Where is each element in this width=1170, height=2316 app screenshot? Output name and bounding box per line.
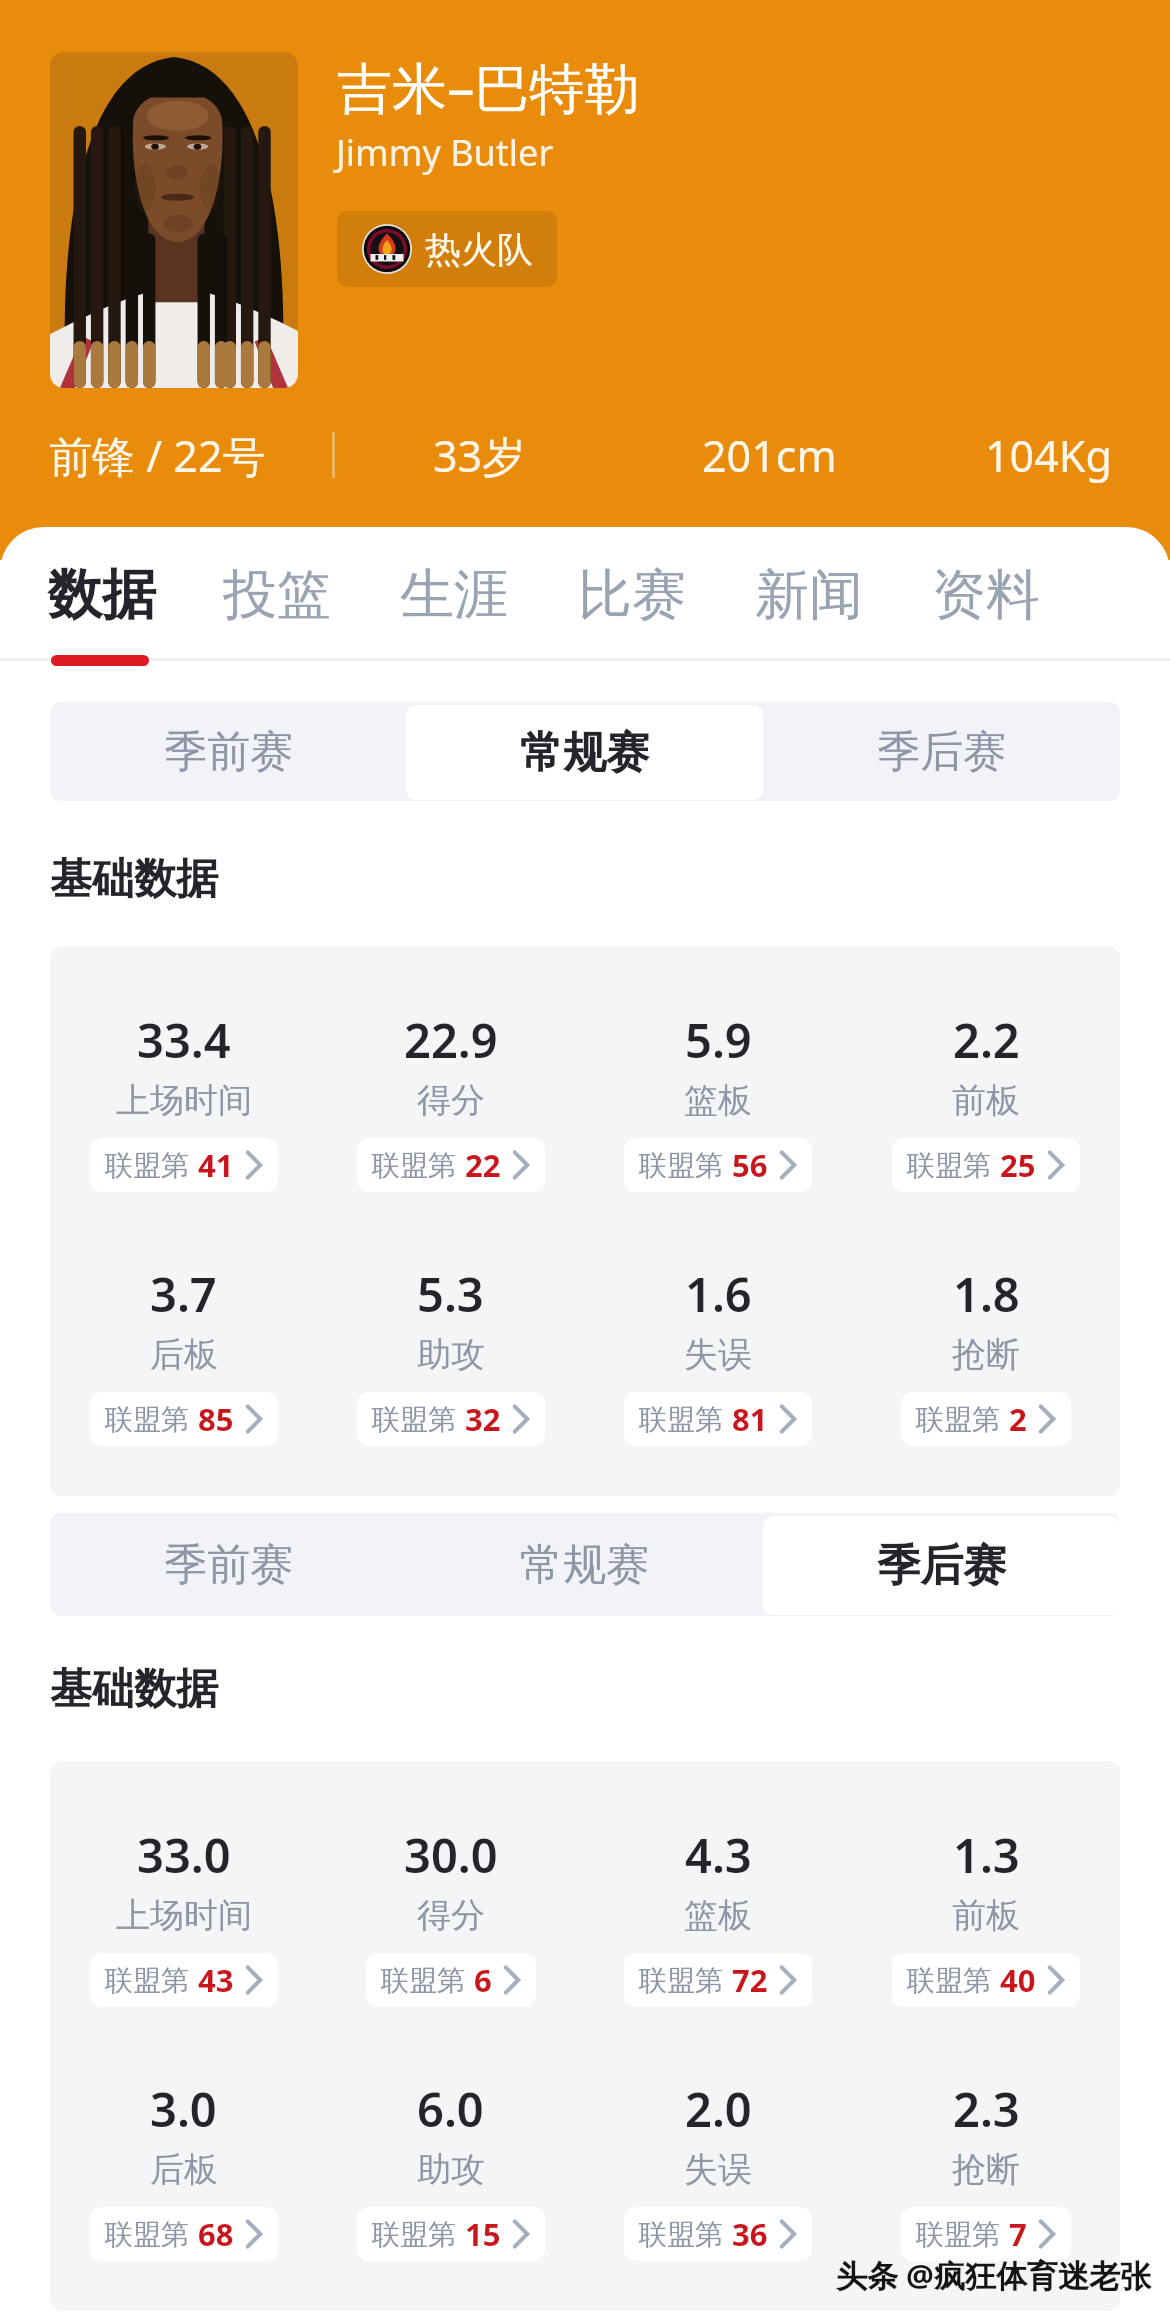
staticText: 联盟第 [372,2217,456,2252]
button[interactable]: 比赛 [560,547,704,643]
staticText: Jimmy Butler [336,128,554,177]
staticText: 72 [732,1959,768,2001]
staticText: 5.9 [685,1008,752,1072]
staticText: 68 [198,2213,234,2255]
button[interactable]: 资料 [914,547,1058,643]
staticText: 41 [198,1144,234,1186]
staticText: 常规赛 [520,726,649,780]
button[interactable]: Jimmy Butler player photo [50,52,298,388]
staticText: 联盟第 [916,1402,1000,1437]
button[interactable]: 33.0 [50,1823,317,2013]
button[interactable]: 2.2 [852,1008,1120,1198]
button[interactable]: 联盟第 [892,1953,1080,2007]
staticText: 40 [1000,1959,1036,2001]
staticText: 联盟第 [639,1963,723,1998]
button[interactable]: 常规赛 [406,1513,763,1616]
staticText: 81 [732,1398,768,1440]
staticText: 联盟第 [372,1148,456,1183]
staticText: 得分 [417,1079,485,1122]
staticText: 2.2 [953,1008,1020,1072]
button[interactable]: 联盟第 [90,2207,278,2261]
staticText: 32 [465,1398,501,1440]
staticText: 后板 [150,2148,218,2191]
button[interactable]: 联盟第 [90,1953,278,2007]
button[interactable]: 联盟第 [90,1138,278,1192]
button[interactable]: 联盟第 [624,1138,812,1192]
button[interactable]: 联盟第 [624,1953,812,2007]
staticText: 前板 [952,1894,1020,1937]
button[interactable]: 投篮 [205,547,349,643]
button[interactable]: 22.9 [317,1008,584,1198]
staticText: 季前赛 [164,725,293,779]
staticText: 33.0 [137,1823,231,1887]
staticText: 22 [465,1144,501,1186]
button[interactable]: 联盟第 [366,1953,536,2007]
staticText: 36 [732,2213,768,2255]
button[interactable]: 季前赛 [50,702,406,801]
button[interactable]: 联盟第 [624,2207,812,2261]
button[interactable]: 新闻 [737,547,881,643]
staticText: 投篮 [223,561,331,629]
staticText: 季后赛 [877,1539,1006,1593]
button[interactable]: 3.7 [50,1262,317,1452]
staticText: 33岁 [433,426,526,485]
staticText: 43 [198,1959,234,2001]
staticText: 201cm [702,426,837,485]
button[interactable]: 4.3 [584,1823,852,2013]
button[interactable]: 1.6 [584,1262,852,1452]
staticText: 6 [474,1959,492,2001]
button[interactable]: 5.3 [317,1262,584,1452]
button[interactable]: 联盟第 [90,1392,278,1446]
staticText: 联盟第 [907,1148,991,1183]
staticText: 得分 [417,1894,485,1937]
button[interactable]: Miami Heat team [337,211,557,287]
staticText: 1.8 [953,1262,1020,1326]
button[interactable]: 联盟第 [901,1392,1071,1446]
button[interactable]: 联盟第 [357,1392,545,1446]
staticText: 15 [465,2213,501,2255]
button[interactable]: 联盟第 [892,1138,1080,1192]
button[interactable]: 生涯 [382,547,526,643]
staticText: 篮板 [684,1079,752,1122]
staticText: 头条 @疯狂体育迷老张 [836,2254,1151,2296]
button[interactable]: 1.3 [852,1823,1120,2013]
button[interactable]: 2.3 [852,2077,1120,2267]
button[interactable]: 季前赛 [50,1513,406,1616]
button[interactable]: 联盟第 [901,2207,1071,2261]
staticText: 失误 [684,2148,752,2191]
staticText: 后板 [150,1333,218,1376]
button[interactable]: 30.0 [317,1823,584,2013]
staticText: 助攻 [417,2148,485,2191]
staticText: 热火队 [425,227,533,272]
button[interactable]: 5.9 [584,1008,852,1198]
button[interactable]: 1.8 [852,1262,1120,1452]
button[interactable]: 季后赛 [763,702,1120,801]
staticText: 3.0 [150,2077,217,2141]
staticText: 30.0 [404,1823,498,1887]
button[interactable]: 常规赛 [406,705,763,800]
button[interactable]: 33.4 [50,1008,317,1198]
staticText: 资料 [932,561,1040,629]
staticText: 85 [198,1398,234,1440]
button[interactable]: 6.0 [317,2077,584,2267]
button[interactable]: 3.0 [50,2077,317,2267]
button[interactable]: 联盟第 [624,1392,812,1446]
staticText: 数据 [48,561,156,629]
button[interactable]: 数据 [30,547,174,643]
button[interactable]: 季后赛 [763,1516,1120,1615]
button[interactable]: 联盟第 [357,1138,545,1192]
staticText: 5.3 [417,1262,484,1326]
staticText: 联盟第 [639,1148,723,1183]
button[interactable]: 联盟第 [357,2207,545,2261]
staticText: 22.9 [404,1008,498,1072]
staticText: 前板 [952,1079,1020,1122]
staticText: 2 [1009,1398,1027,1440]
button[interactable]: 2.0 [584,2077,852,2267]
staticText: 联盟第 [105,2217,189,2252]
staticText: 2.0 [685,2077,752,2141]
staticText: 基础数据 [50,1663,218,1716]
staticText: 上场时间 [116,1894,252,1937]
staticText: 联盟第 [105,1963,189,1998]
staticText: 篮板 [684,1894,752,1937]
staticText: 7 [1009,2213,1027,2255]
